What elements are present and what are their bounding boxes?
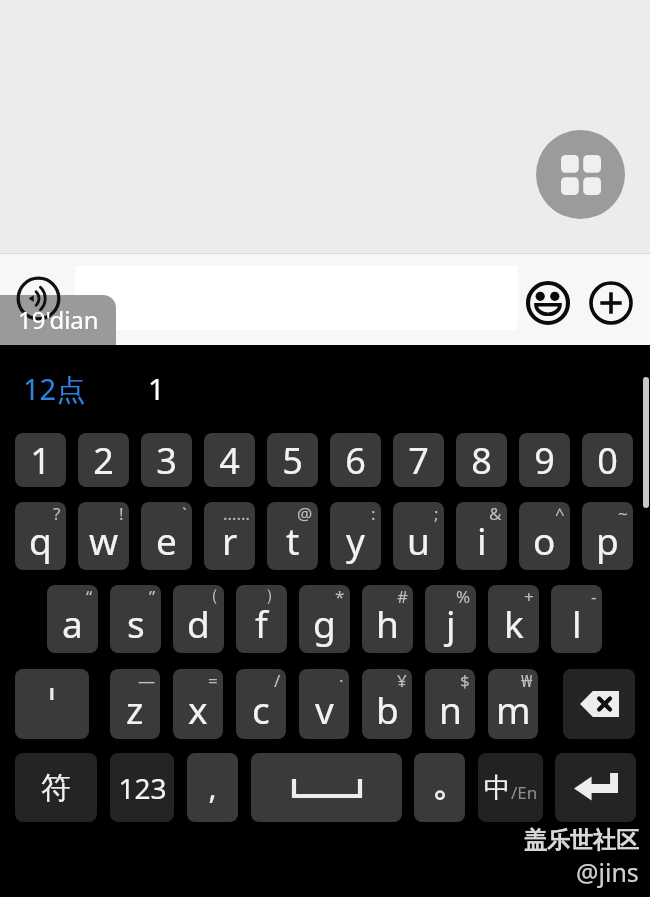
staticText: j bbox=[446, 598, 456, 648]
button[interactable]: 符 bbox=[15, 753, 97, 822]
button[interactable]: 123 bbox=[110, 753, 174, 822]
staticText: ; bbox=[434, 502, 439, 525]
button[interactable]: ` bbox=[141, 502, 192, 570]
button[interactable]: · bbox=[299, 669, 349, 739]
button[interactable]: …… bbox=[204, 502, 255, 570]
button[interactable]: # bbox=[362, 585, 413, 653]
button[interactable]: @ bbox=[267, 502, 318, 570]
button[interactable]: “ bbox=[47, 585, 98, 653]
button[interactable]: ^ bbox=[519, 502, 570, 570]
button[interactable]: - bbox=[551, 585, 602, 653]
staticText: 1 bbox=[148, 369, 165, 408]
staticText: ” bbox=[149, 585, 156, 608]
button[interactable]: : bbox=[330, 502, 381, 570]
button[interactable]: / bbox=[236, 669, 286, 739]
button[interactable]: 3 bbox=[141, 433, 192, 487]
button[interactable]: Backspace bbox=[563, 669, 635, 739]
button[interactable]: — bbox=[110, 669, 160, 739]
button[interactable]: * bbox=[299, 585, 350, 653]
staticText: 3 bbox=[156, 436, 177, 485]
button[interactable]: 4 bbox=[204, 433, 255, 487]
staticText: % bbox=[456, 585, 471, 608]
button[interactable]: Apps bbox=[536, 130, 625, 219]
staticText: （ bbox=[202, 585, 219, 606]
staticText: o bbox=[533, 515, 556, 565]
staticText: u bbox=[407, 515, 430, 565]
staticText: g bbox=[313, 598, 336, 648]
button[interactable]: ¥ bbox=[362, 669, 412, 739]
button[interactable]: $ bbox=[425, 669, 475, 739]
staticText: l bbox=[572, 598, 582, 648]
staticText: a bbox=[62, 598, 83, 648]
button[interactable]: 2 bbox=[78, 433, 129, 487]
button[interactable]: 9 bbox=[519, 433, 570, 487]
staticText: 7 bbox=[408, 436, 429, 485]
staticText: 2 bbox=[93, 436, 114, 485]
button[interactable]: ? bbox=[15, 502, 66, 570]
staticText: @ bbox=[297, 502, 313, 525]
staticText: , bbox=[208, 767, 217, 808]
staticText: 5 bbox=[282, 436, 303, 485]
staticText: p bbox=[596, 515, 619, 565]
staticText: v bbox=[315, 684, 334, 734]
button[interactable]: ₩ bbox=[488, 669, 538, 739]
staticText: 9 bbox=[534, 436, 555, 485]
staticText: 符 bbox=[41, 769, 71, 807]
button[interactable]: Enter bbox=[555, 753, 636, 822]
staticText: = bbox=[208, 669, 218, 692]
button[interactable]: ” bbox=[110, 585, 161, 653]
staticText: 6 bbox=[345, 436, 366, 485]
button[interactable]: Emoji bbox=[523, 278, 573, 328]
button[interactable]: 中 bbox=[478, 753, 543, 822]
staticText: 123 bbox=[118, 769, 167, 807]
button[interactable]: Period bbox=[414, 753, 465, 822]
staticText: z bbox=[126, 684, 144, 734]
button[interactable]: 7 bbox=[393, 433, 444, 487]
staticText: h bbox=[376, 598, 399, 648]
staticText: s bbox=[127, 598, 145, 648]
button[interactable]: % bbox=[425, 585, 476, 653]
button[interactable] bbox=[75, 266, 518, 330]
staticText: + bbox=[524, 585, 534, 608]
button[interactable]: 12点 bbox=[23, 369, 86, 409]
button[interactable]: 6 bbox=[330, 433, 381, 487]
staticText: ¥ bbox=[397, 669, 407, 692]
button[interactable]: 8 bbox=[456, 433, 507, 487]
button[interactable]: ; bbox=[393, 502, 444, 570]
button[interactable]: （ bbox=[173, 585, 224, 653]
button[interactable]: & bbox=[456, 502, 507, 570]
staticText: b bbox=[376, 684, 399, 734]
staticText: — bbox=[138, 669, 155, 692]
staticText: @jins bbox=[576, 855, 639, 889]
button[interactable]: ~ bbox=[582, 502, 633, 570]
staticText: y bbox=[346, 515, 365, 565]
button[interactable]: ! bbox=[78, 502, 129, 570]
button[interactable]: Apostrophe bbox=[15, 669, 89, 739]
staticText: e bbox=[156, 515, 177, 565]
staticText: r bbox=[222, 515, 238, 565]
staticText: ` bbox=[182, 502, 187, 525]
button[interactable]: 1 bbox=[148, 369, 165, 408]
staticText: $ bbox=[460, 669, 470, 692]
button[interactable]: 0 bbox=[582, 433, 633, 487]
button[interactable]: Voice input bbox=[13, 273, 64, 324]
button[interactable]: = bbox=[173, 669, 223, 739]
button[interactable]: More bbox=[586, 278, 636, 328]
staticText: k bbox=[504, 598, 524, 648]
button[interactable]: Space bbox=[251, 753, 402, 822]
staticText: m bbox=[496, 684, 531, 734]
button[interactable]: ） bbox=[236, 585, 287, 653]
staticText: / bbox=[274, 669, 281, 692]
button[interactable]: + bbox=[488, 585, 539, 653]
button[interactable]: 1 bbox=[15, 433, 66, 487]
staticText: f bbox=[255, 598, 268, 648]
staticText: n bbox=[439, 684, 462, 734]
button[interactable]: 5 bbox=[267, 433, 318, 487]
staticText: w bbox=[89, 515, 119, 565]
staticText: ^ bbox=[555, 502, 565, 525]
button[interactable]: , bbox=[187, 753, 238, 822]
staticText: ₩ bbox=[521, 669, 533, 692]
staticText: t bbox=[286, 515, 300, 565]
staticText: : bbox=[371, 502, 376, 525]
staticText: /En bbox=[511, 781, 538, 804]
